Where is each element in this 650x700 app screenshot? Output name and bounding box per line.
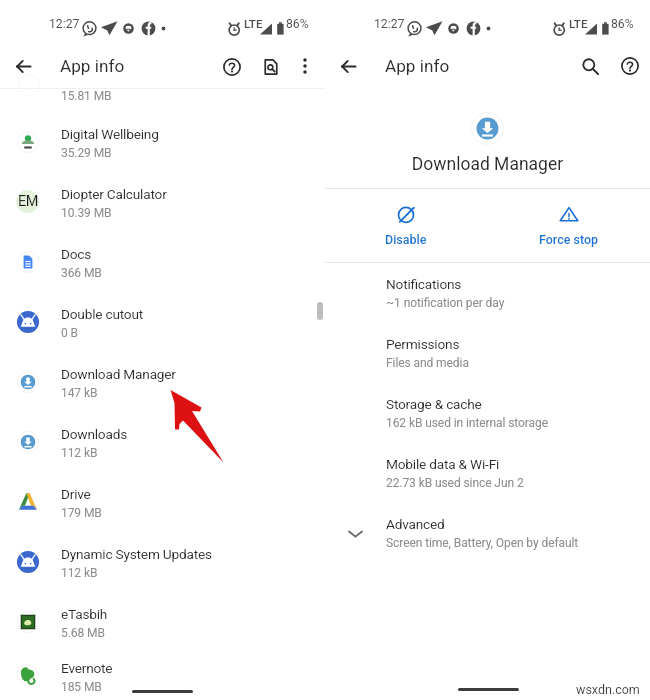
staticText: 0 B <box>61 326 78 340</box>
staticText: 162 kB used in internal storage <box>386 416 548 430</box>
button[interactable]: Double cutout <box>0 293 325 353</box>
staticText: 185 MB <box>61 680 102 694</box>
button[interactable]: Digital Wellbeing <box>0 113 325 173</box>
staticText: App info <box>385 56 450 76</box>
staticText: 147 kB <box>61 386 98 400</box>
staticText: Screen time, Battery, Open by default <box>386 536 579 550</box>
button[interactable]: Storage & cache <box>325 383 650 443</box>
button[interactable]: Evernote <box>0 653 325 700</box>
staticText: Permissions <box>386 336 460 352</box>
staticText: 12:27 <box>374 17 405 31</box>
staticText: 179 MB <box>61 506 102 520</box>
button[interactable]: Back <box>0 44 47 88</box>
button[interactable]: Search apps <box>254 50 287 83</box>
staticText: Digital Wellbeing <box>61 126 159 142</box>
staticText: 15.81 MB <box>61 89 112 103</box>
staticText: Docs <box>61 246 92 262</box>
staticText: 12:27 <box>49 17 80 31</box>
staticText: 112 kB <box>61 446 98 460</box>
button[interactable]: Docs <box>0 233 325 293</box>
button[interactable]: Download Manager <box>0 353 325 413</box>
button[interactable]: Disable <box>325 189 487 262</box>
button[interactable]: Permissions <box>325 323 650 383</box>
staticText: Force stop <box>539 232 599 247</box>
staticText: Drive <box>61 486 91 502</box>
staticText: Notifications <box>386 276 462 292</box>
staticText: Storage & cache <box>386 396 482 412</box>
staticText: Evernote <box>61 660 113 676</box>
staticText: wsxdn.com <box>576 682 640 697</box>
staticText: 86% <box>286 17 309 31</box>
button[interactable]: Drive <box>0 473 325 533</box>
staticText: LTE <box>244 17 263 31</box>
button[interactable]: EM <box>0 173 325 233</box>
button[interactable]: Help <box>610 46 650 86</box>
staticText: 5.68 MB <box>61 626 105 640</box>
button[interactable]: Notifications <box>325 263 650 323</box>
button[interactable]: Back <box>325 44 372 88</box>
staticText: Dynamic System Updates <box>61 546 212 562</box>
staticText: Disable <box>385 232 427 247</box>
button[interactable]: Mobile data & Wi-Fi <box>325 443 650 503</box>
staticText: 10.39 MB <box>61 206 112 220</box>
staticText: eTasbih <box>61 606 108 622</box>
staticText: Download Manager <box>61 366 176 382</box>
staticText: Files and media <box>386 356 469 370</box>
staticText: 22.73 kB used since Jun 2 <box>386 476 524 490</box>
staticText: 366 MB <box>61 266 102 280</box>
button[interactable]: Help <box>215 50 248 83</box>
staticText: App info <box>60 56 125 76</box>
button[interactable]: Downloads <box>0 413 325 473</box>
staticText: 35.29 MB <box>61 146 112 160</box>
staticText: Downloads <box>61 426 128 442</box>
button[interactable]: eTasbih <box>0 593 325 653</box>
staticText: ~1 notification per day <box>386 296 505 310</box>
button[interactable]: Dynamic System Updates <box>0 533 325 593</box>
button[interactable]: Search <box>570 46 610 86</box>
staticText: Mobile data & Wi-Fi <box>386 456 500 472</box>
button[interactable]: Force stop <box>487 189 650 262</box>
staticText: Download Manager <box>325 154 650 175</box>
staticText: 86% <box>611 17 634 31</box>
staticText: 112 kB <box>61 566 98 580</box>
staticText: LTE <box>569 17 588 31</box>
staticText: Advanced <box>386 516 445 532</box>
button[interactable]: More options <box>291 52 319 80</box>
staticText: EM <box>18 193 38 210</box>
staticText: Diopter Calculator <box>61 186 167 202</box>
button[interactable]: Advanced <box>325 503 650 563</box>
staticText: Double cutout <box>61 306 144 322</box>
